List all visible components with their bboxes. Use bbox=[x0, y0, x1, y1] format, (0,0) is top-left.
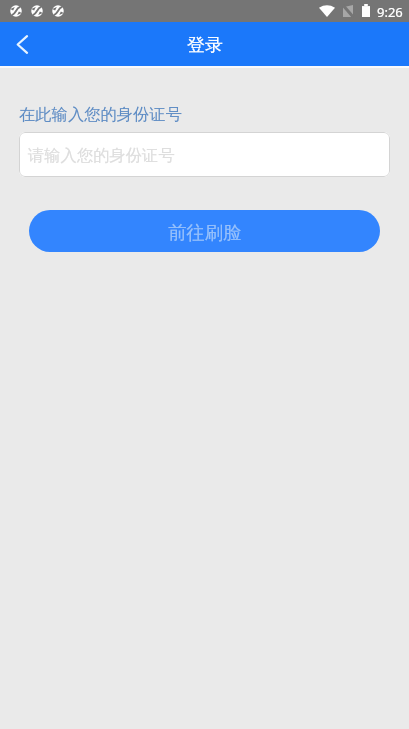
button[interactable]: 请输入您的身份证号 bbox=[19, 132, 390, 177]
staticText: 前往刷脸 bbox=[168, 221, 242, 244]
staticText: 在此输入您的身份证号 bbox=[19, 104, 182, 125]
staticText: 请输入您的身份证号 bbox=[28, 145, 175, 166]
staticText: 登录 bbox=[187, 34, 223, 57]
staticText: 9:26 bbox=[377, 3, 403, 21]
button[interactable]: Back bbox=[0, 22, 44, 66]
button[interactable]: 前往刷脸 bbox=[29, 210, 380, 252]
